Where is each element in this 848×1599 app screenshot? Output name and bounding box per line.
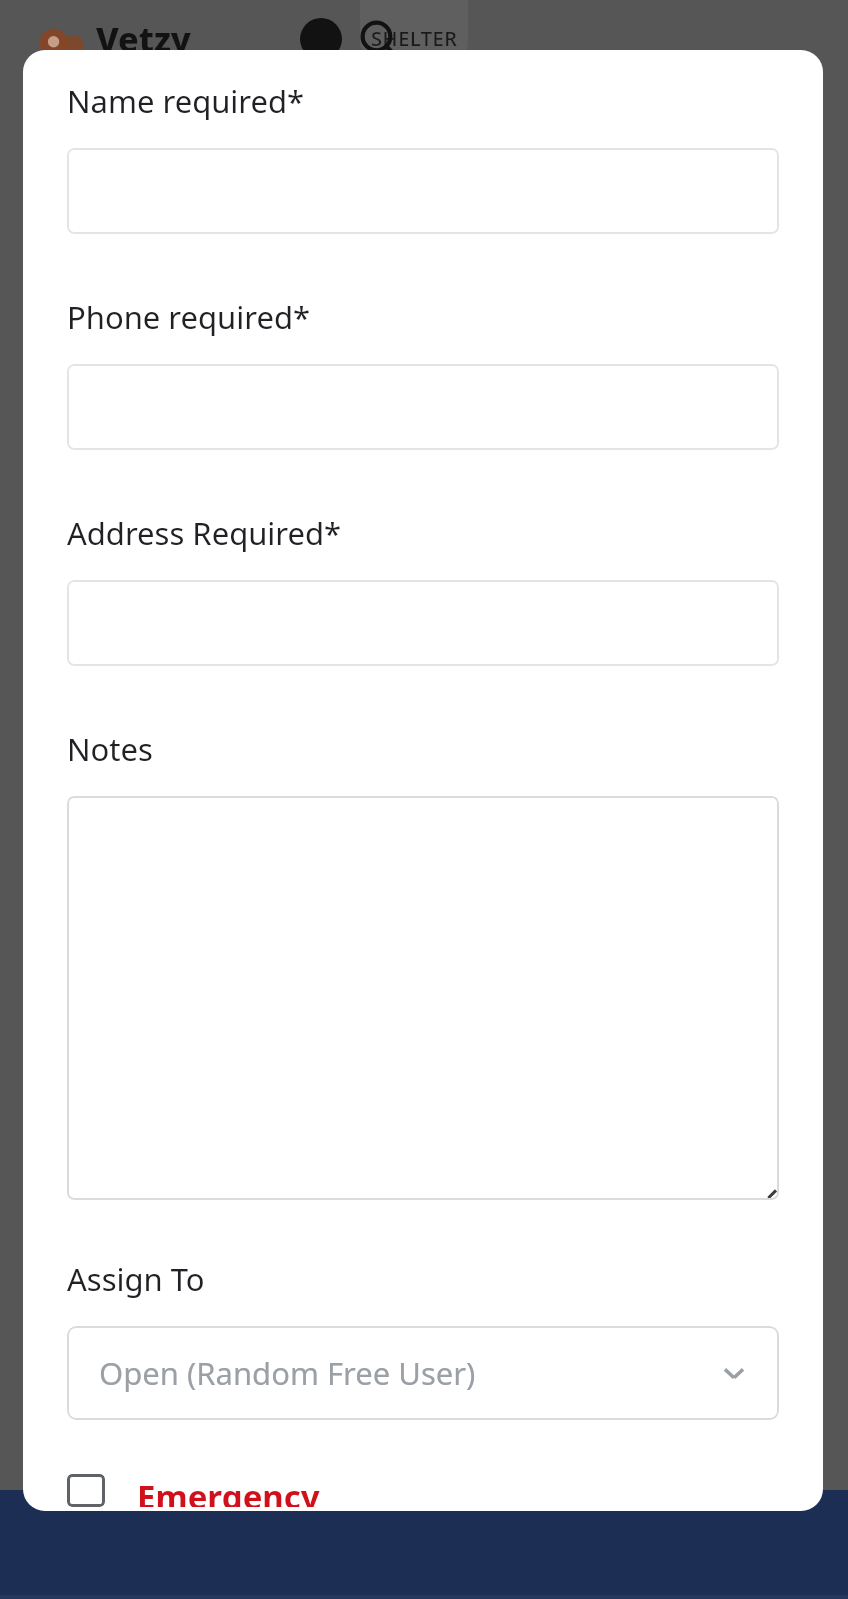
staticText: Phone required* (67, 296, 311, 338)
button[interactable]: SHELTER (360, 0, 468, 52)
button[interactable]: Emergency (67, 1470, 320, 1511)
button[interactable]: + CREATE NEW VISIT (283, 1478, 566, 1513)
staticText: Address Required* (67, 512, 342, 554)
button[interactable] (67, 148, 779, 234)
button[interactable]: Search (358, 18, 400, 60)
button[interactable] (67, 796, 779, 1200)
staticText: SHELTER (371, 25, 458, 52)
staticText: Assign To (67, 1258, 205, 1300)
button[interactable]: Profile (300, 18, 342, 60)
button[interactable] (67, 364, 779, 450)
staticText: Open (Random Free User) (99, 1352, 476, 1394)
staticText: Name required* (67, 80, 305, 122)
staticText: Vetzy (96, 16, 191, 62)
staticText: + CREATE NEW VISIT (283, 1478, 566, 1513)
button[interactable]: Open (Random Free User) (67, 1326, 779, 1420)
button[interactable] (67, 580, 779, 666)
staticText: Emergency (137, 1474, 320, 1507)
staticText: Notes (67, 728, 153, 770)
